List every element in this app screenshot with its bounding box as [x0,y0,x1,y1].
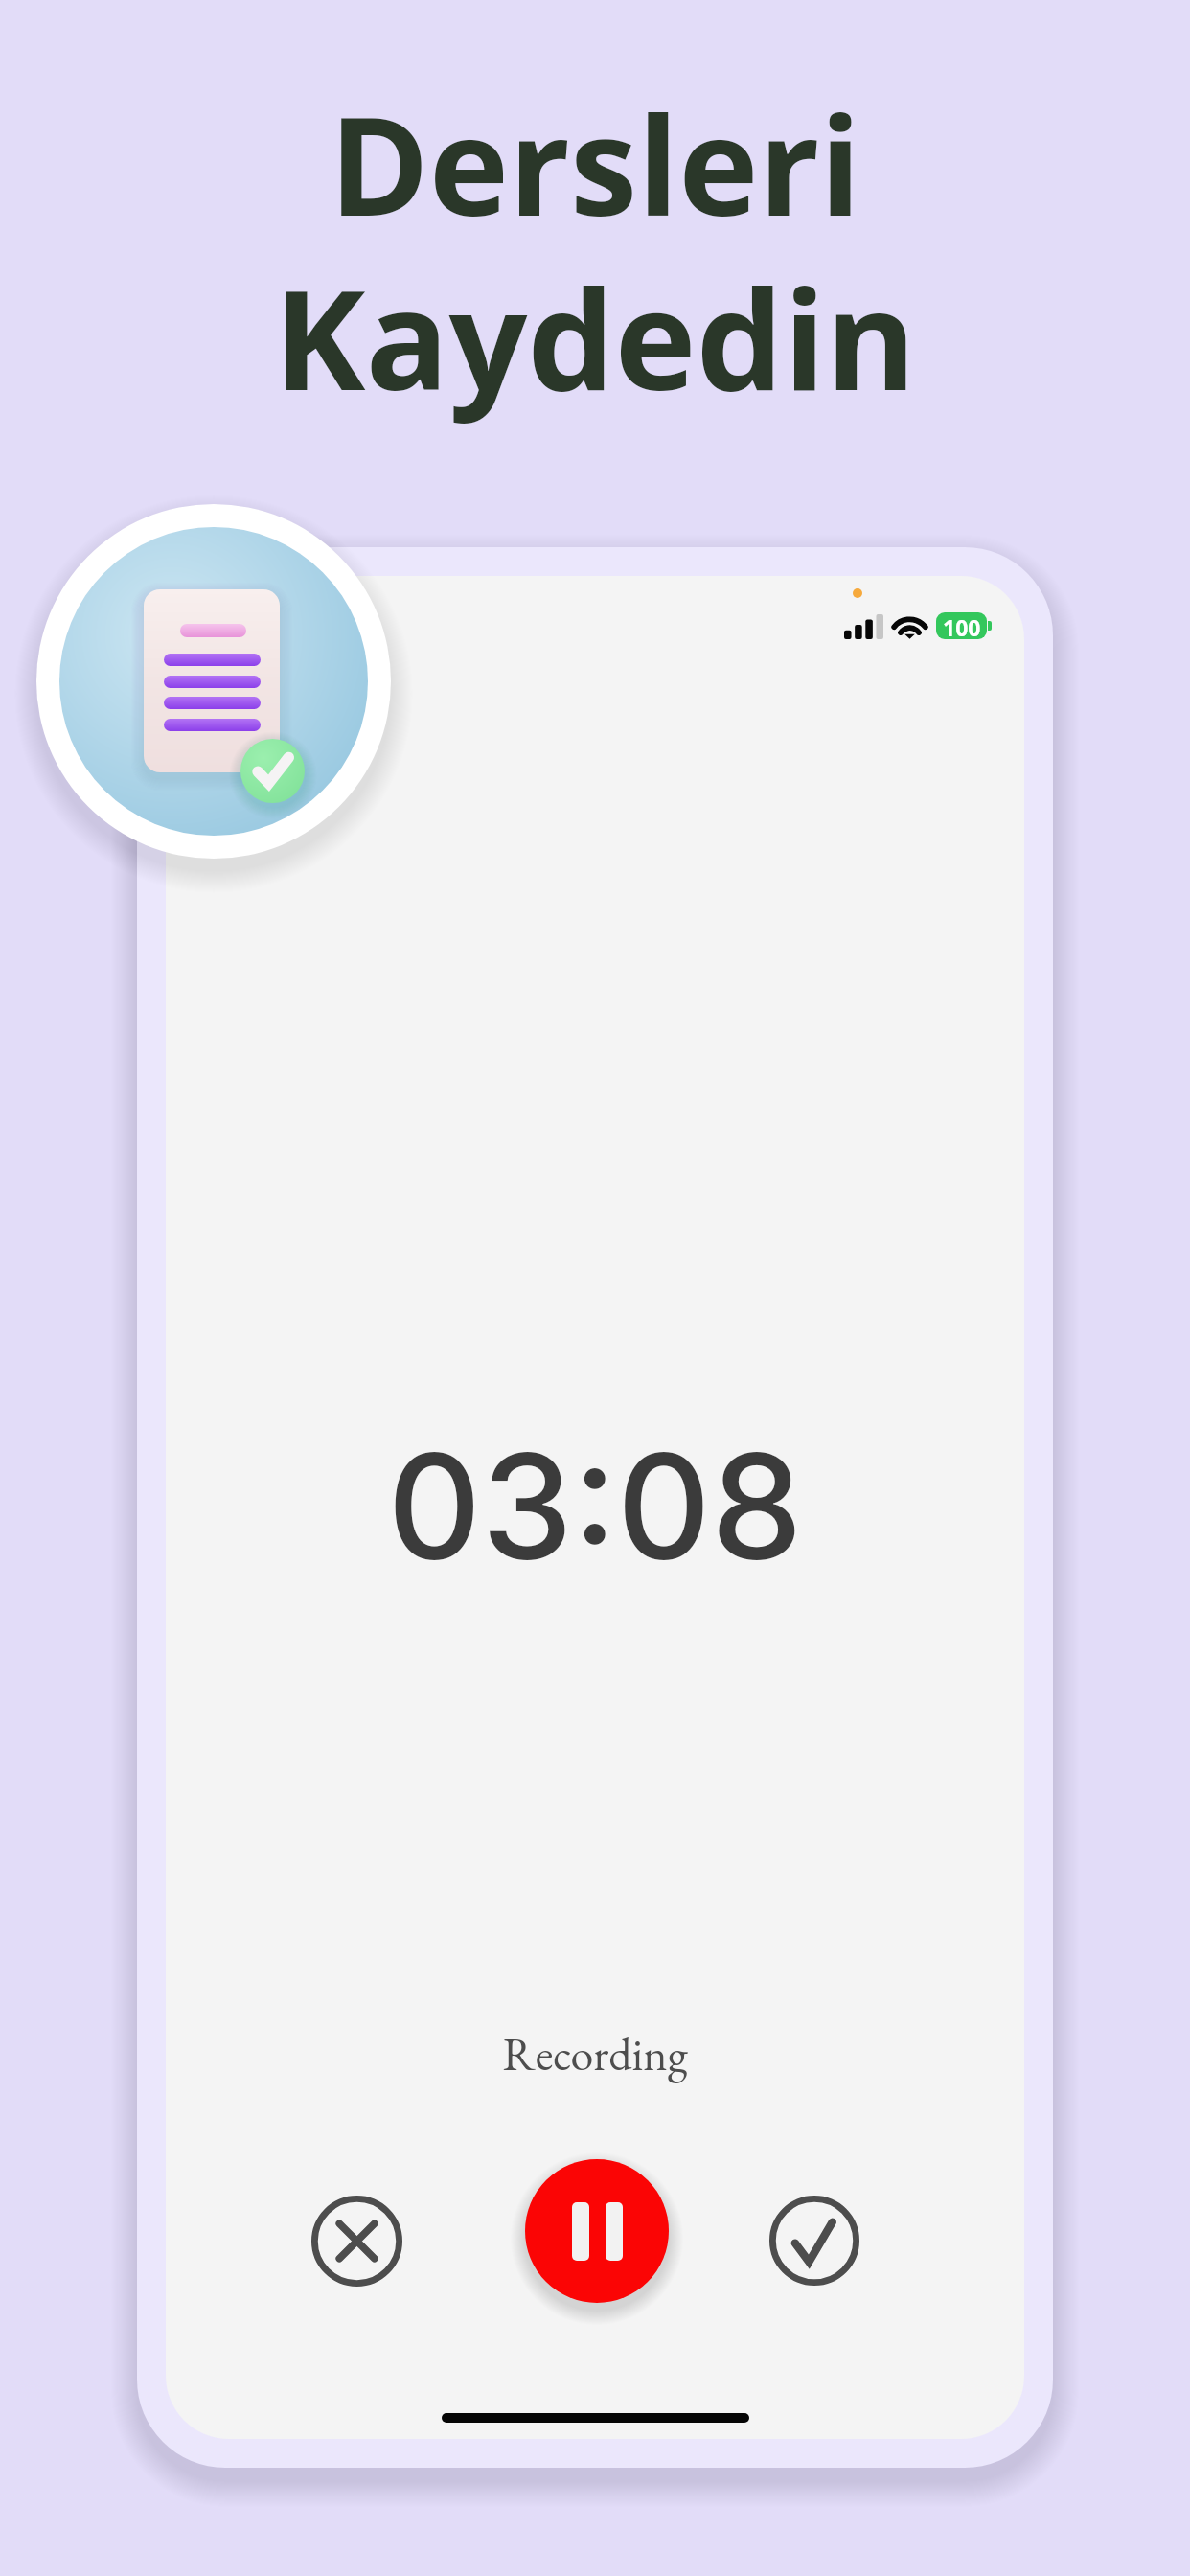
button[interactable]: Cancel recording [311,2196,402,2287]
staticText: Kaydedin [0,242,1190,430]
staticText: 100 [943,612,981,639]
staticText: Recording [166,2024,1024,2084]
button[interactable]: Finish recording [769,2196,859,2286]
staticText: Dersleri [0,71,1190,255]
staticText: 03:08 [166,1418,1024,1595]
button[interactable]: Pause recording [525,2159,669,2303]
